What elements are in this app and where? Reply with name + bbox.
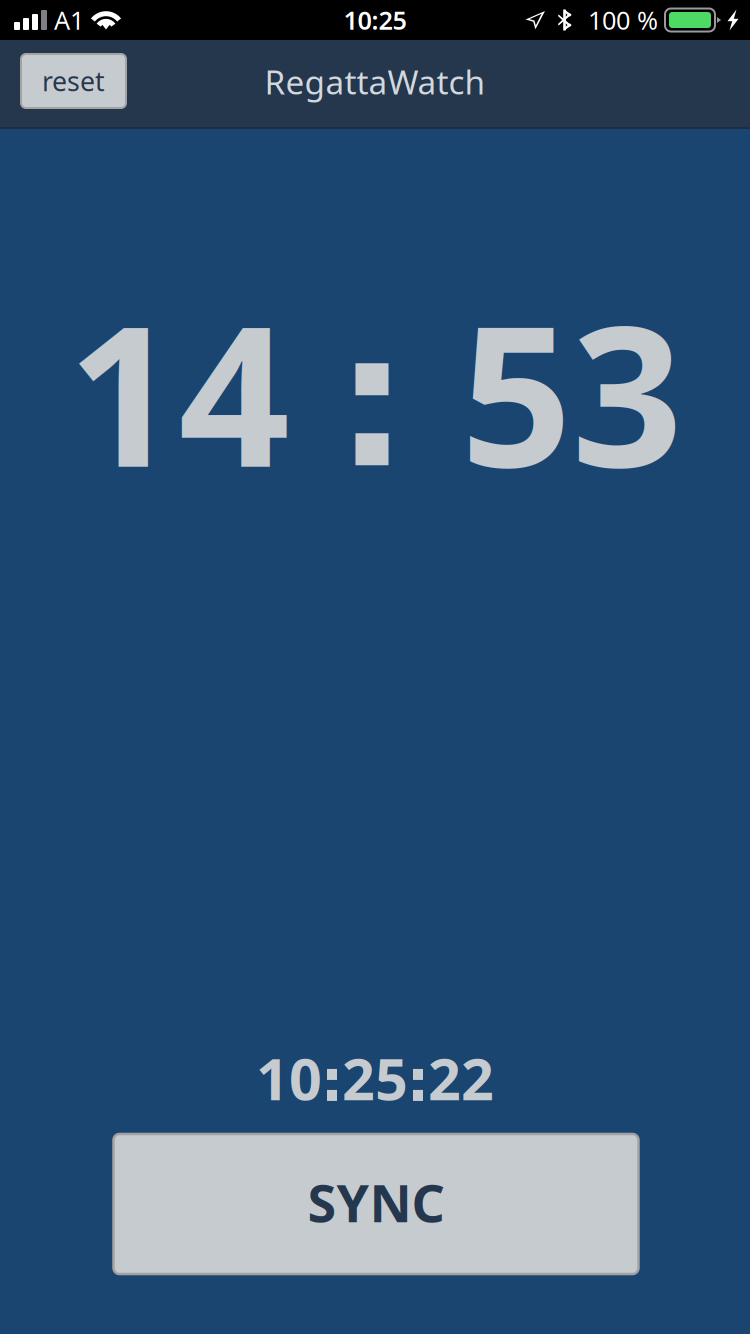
button[interactable]: SYNC: [112, 1134, 637, 1274]
button[interactable]: reset: [21, 54, 126, 108]
staticText: 25: [342, 1040, 408, 1116]
staticText: reset: [42, 63, 105, 99]
staticText: 10: [256, 1040, 322, 1116]
staticText: RegattaWatch: [264, 59, 485, 104]
staticText: 53: [460, 262, 682, 520]
staticText: 10:25: [343, 3, 406, 37]
staticText: 22: [428, 1040, 494, 1116]
staticText: A1: [54, 3, 84, 37]
staticText: 100 %: [588, 3, 658, 37]
staticText: SYNC: [307, 1167, 444, 1237]
staticText: 14: [67, 262, 289, 520]
